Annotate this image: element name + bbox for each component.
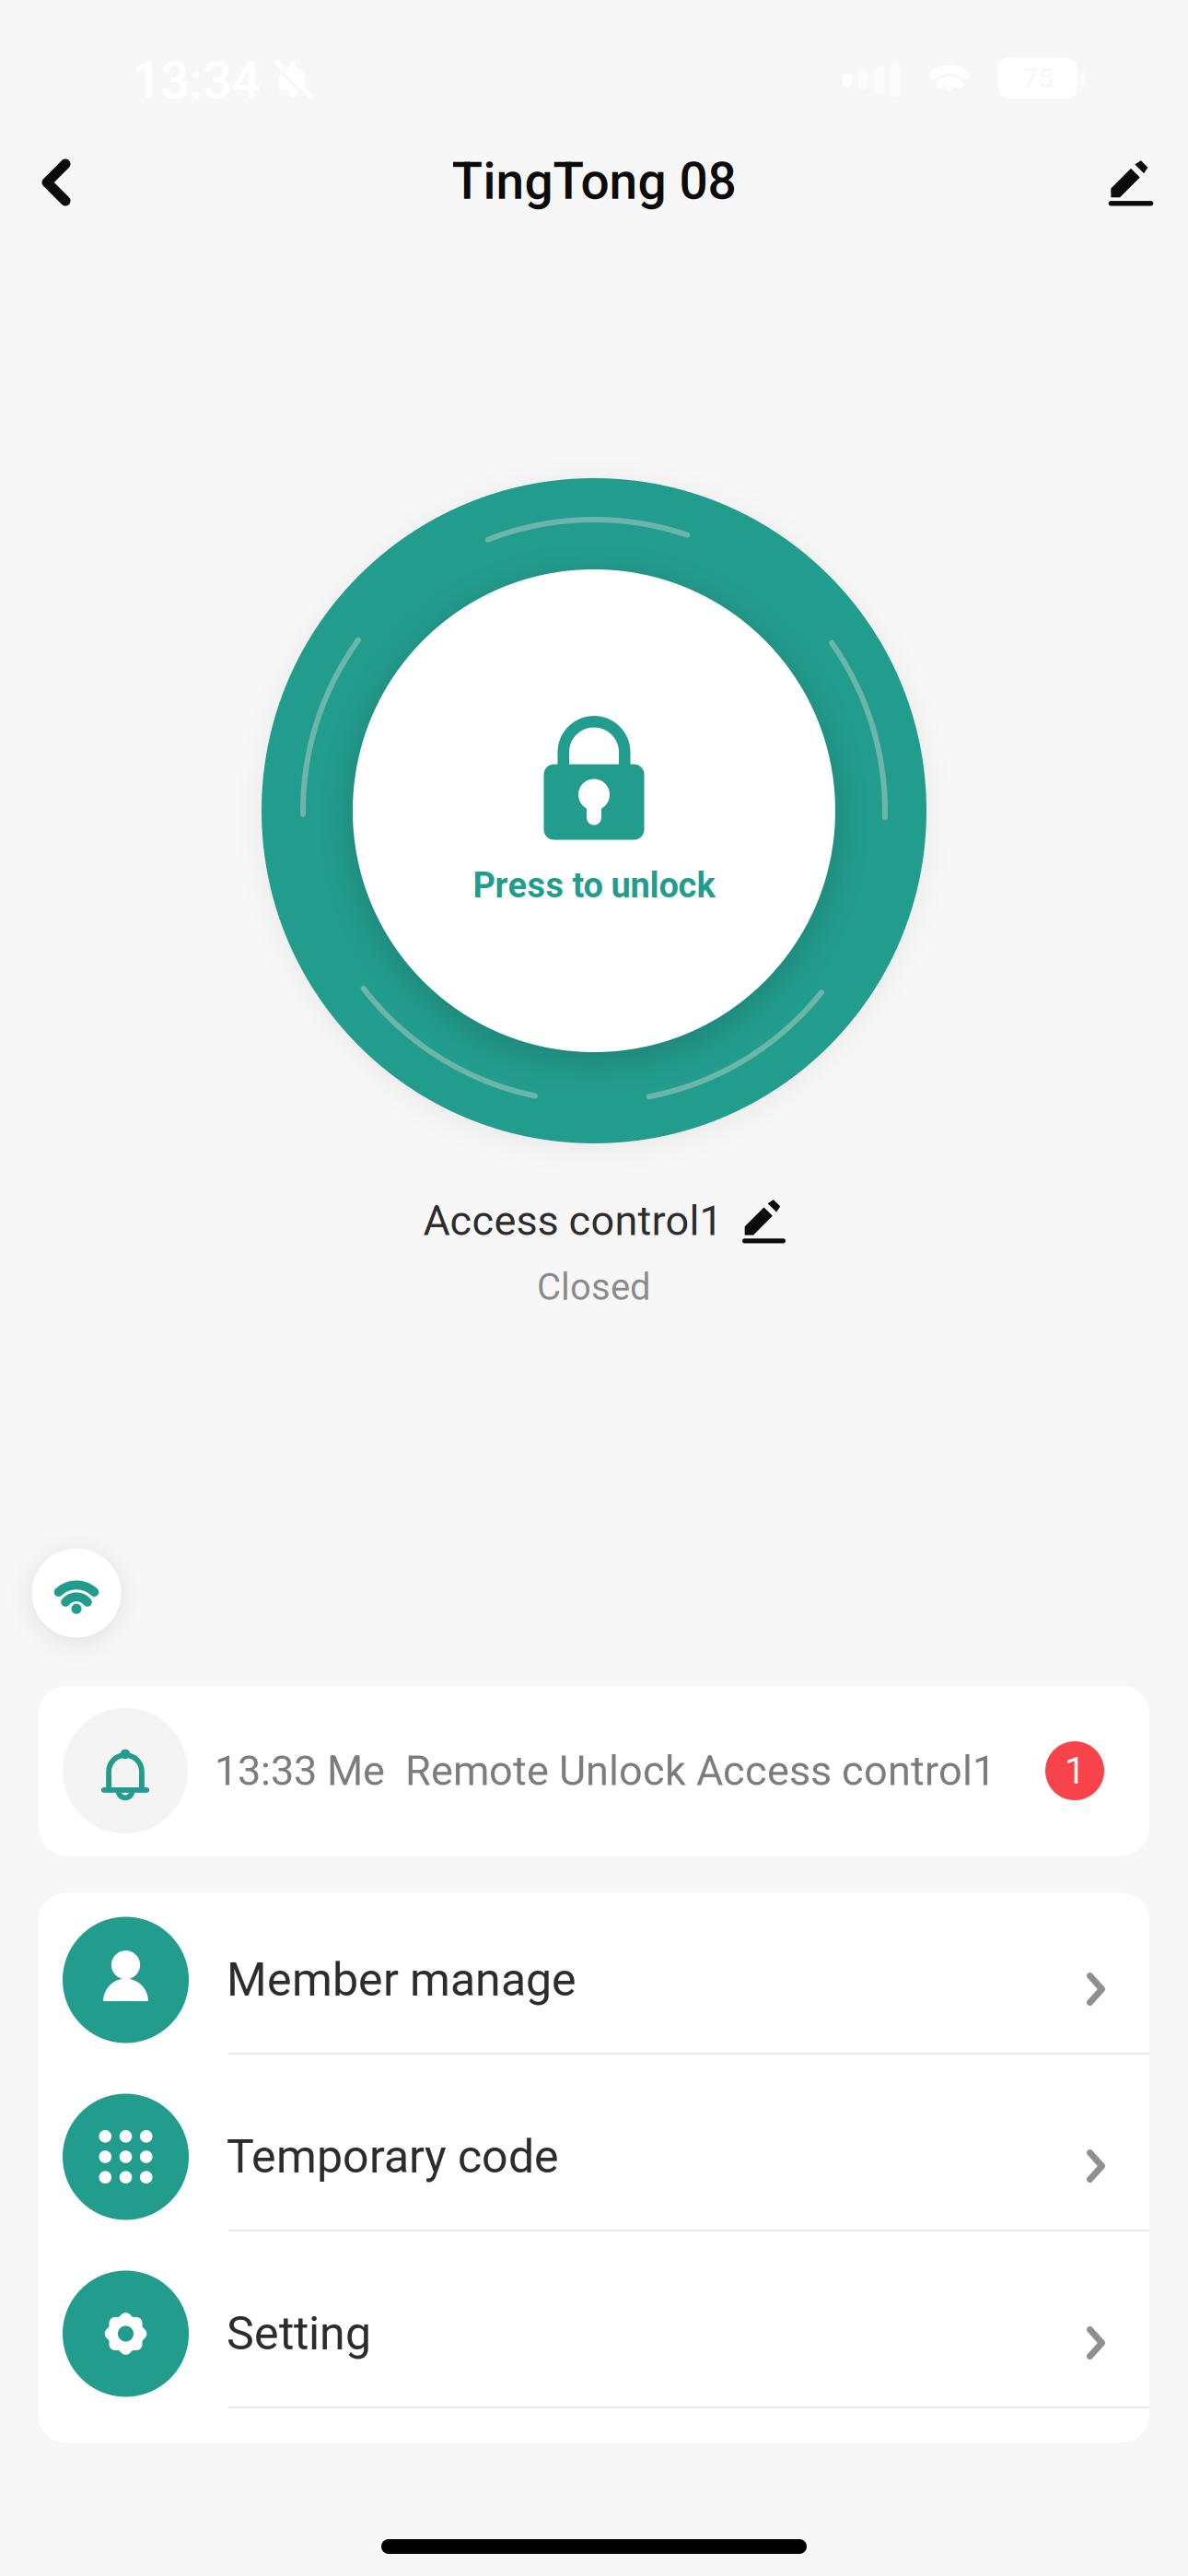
- staticText: 13:34: [132, 51, 260, 111]
- staticText: Setting: [227, 2307, 371, 2361]
- button[interactable]: Press to unlock: [262, 478, 926, 1143]
- button[interactable]: Back: [1, 127, 111, 238]
- staticText: Closed: [537, 1266, 651, 1309]
- button[interactable]: 13:33 Me Remote Unlock Access control1: [39, 1686, 1149, 1856]
- staticText: Access control1: [423, 1196, 722, 1245]
- button[interactable]: Wi-Fi: [32, 1548, 121, 1638]
- staticText: Press to unlock: [473, 865, 715, 906]
- button[interactable]: Setting: [39, 2256, 1149, 2433]
- button[interactable]: Temporary code: [39, 2079, 1149, 2256]
- staticText: Member manage: [227, 1953, 577, 2007]
- staticText: Temporary code: [227, 2130, 559, 2184]
- button[interactable]: Member manage: [39, 1903, 1149, 2079]
- staticText: 1: [1065, 1749, 1085, 1792]
- staticText: TingTong 08: [452, 152, 736, 211]
- button[interactable]: Access control1: [423, 1196, 787, 1245]
- staticText: 13:33 Me Remote Unlock Access control1: [215, 1746, 996, 1795]
- button[interactable]: Edit: [1080, 132, 1182, 233]
